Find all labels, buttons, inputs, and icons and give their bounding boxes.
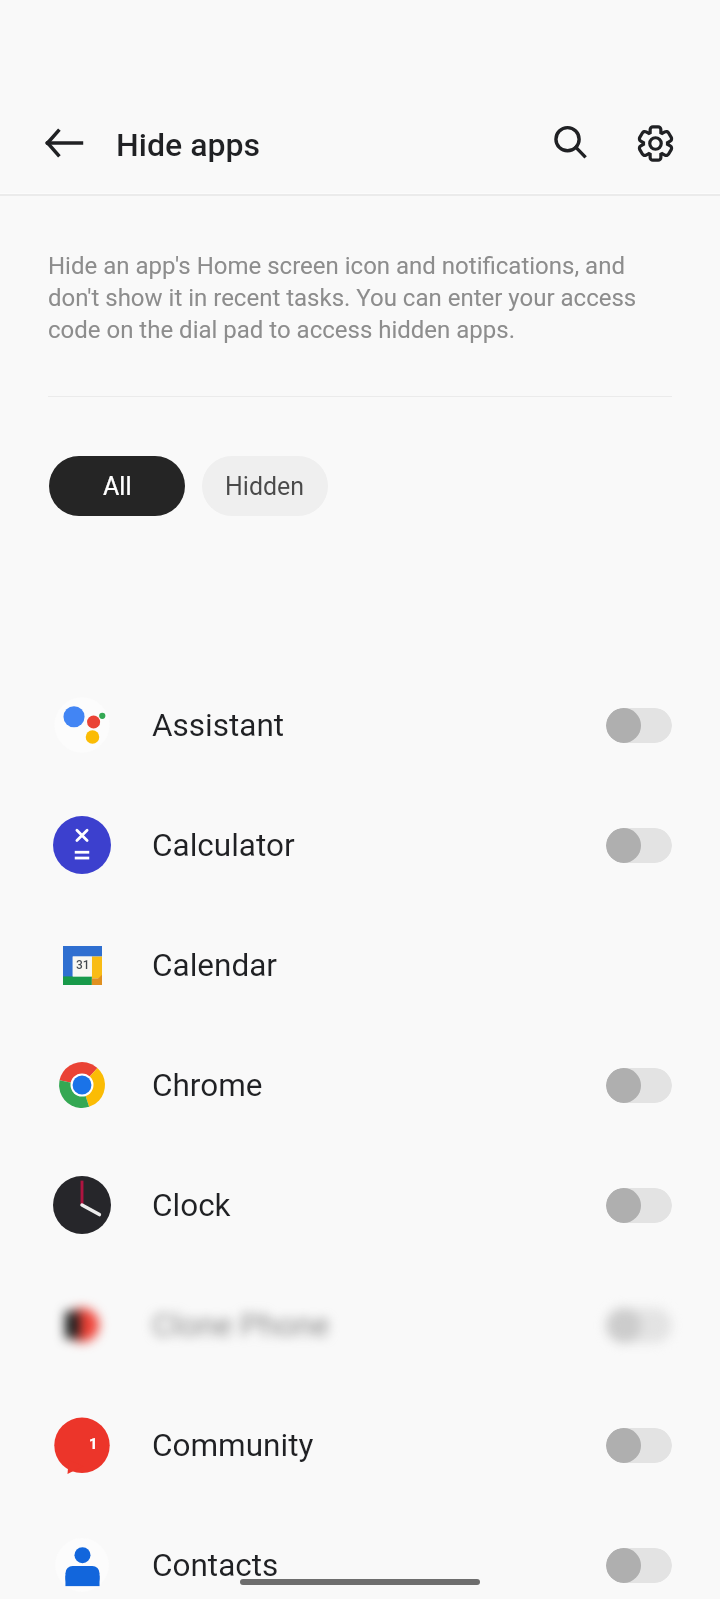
button[interactable]: Clone Phone (0, 1265, 720, 1385)
button[interactable]: 31 (0, 905, 720, 1025)
staticText: Calculator (152, 827, 295, 864)
button[interactable]: Toggle (606, 1548, 672, 1583)
staticText: Assistant (152, 707, 285, 744)
button[interactable]: Chrome (0, 1025, 720, 1145)
staticText: 31 (76, 958, 90, 972)
staticText: 1 (89, 1435, 98, 1453)
button[interactable]: Hidden (202, 456, 328, 516)
button[interactable]: Search (538, 111, 602, 175)
button[interactable]: Calculator (0, 785, 720, 905)
staticText: Hidden (225, 472, 305, 501)
staticText: Hide an app's Home screen icon and notif… (48, 252, 648, 344)
button[interactable]: 1 (0, 1385, 720, 1505)
staticText: Clone Phone (152, 1307, 330, 1344)
staticText: Contacts (152, 1547, 279, 1584)
button[interactable]: Back (32, 111, 96, 175)
staticText: Community (152, 1427, 314, 1464)
button[interactable]: Settings (623, 111, 687, 175)
button[interactable]: Assistant (0, 665, 720, 785)
staticText: All (103, 472, 132, 501)
staticText: Clock (152, 1187, 231, 1224)
staticText: Chrome (152, 1067, 263, 1104)
button[interactable]: Clock (0, 1145, 720, 1265)
button[interactable]: Toggle (606, 1308, 672, 1343)
staticText: Hide apps (116, 126, 261, 164)
button[interactable]: Contacts (0, 1505, 720, 1599)
button[interactable]: Toggle (606, 828, 672, 863)
button[interactable]: Toggle (606, 1068, 672, 1103)
button[interactable]: All (49, 456, 185, 516)
button[interactable]: Toggle (606, 708, 672, 743)
staticText: Calendar (152, 947, 277, 984)
button[interactable]: Toggle (606, 1428, 672, 1463)
button[interactable]: Toggle (606, 1188, 672, 1223)
